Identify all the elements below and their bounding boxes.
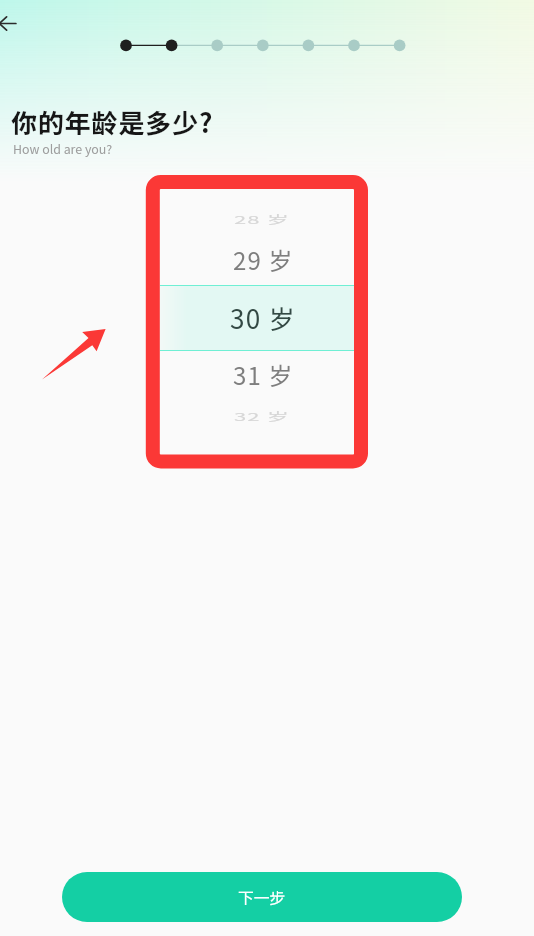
button[interactable]: 31 岁 (160, 352, 354, 396)
button[interactable]: 28 岁 (160, 197, 354, 241)
staticText: 下一步 (238, 886, 286, 909)
staticText: 28 岁 (234, 211, 290, 227)
button[interactable]: 下一步 (62, 872, 462, 922)
button[interactable]: 29 岁 (160, 237, 354, 281)
staticText: 30 岁 (230, 299, 296, 337)
staticText: 31 岁 (233, 357, 294, 392)
staticText: How old are you? (13, 140, 113, 158)
button[interactable]: 32 岁 (160, 394, 354, 438)
staticText: 你的年龄是多少? (11, 103, 214, 141)
staticText: 32 岁 (234, 408, 290, 424)
button[interactable]: 30 岁 (160, 285, 354, 351)
staticText: 29 岁 (233, 242, 294, 277)
button[interactable]: Back (0, 2, 43, 45)
